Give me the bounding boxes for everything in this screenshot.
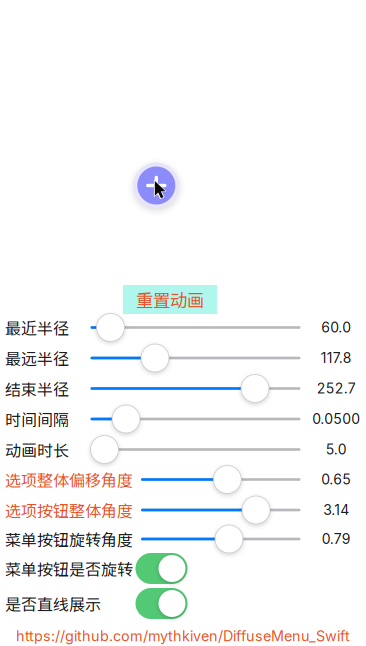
staticText: https://github.com/mythkiven/DiffuseMenu…: [16, 627, 350, 645]
button[interactable]: 重置动画: [123, 285, 217, 314]
button[interactable]: https://github.com/mythkiven/DiffuseMenu…: [13, 627, 353, 645]
staticText: 是否直线展示: [5, 592, 101, 615]
button[interactable]: Add: [131, 160, 181, 210]
button[interactable]: 菜单按钮是否旋转: [135, 553, 187, 584]
staticText: 菜单按钮是否旋转: [5, 557, 133, 580]
staticText: 选项整体偏移角度: [5, 468, 133, 491]
staticText: 117.8: [321, 349, 352, 366]
staticText: 最远半径: [5, 346, 69, 370]
staticText: 动画时长: [5, 438, 69, 461]
staticText: 结束半径: [5, 377, 69, 400]
staticText: 选项按钮整体角度: [5, 498, 133, 522]
staticText: 5.0: [326, 441, 347, 458]
staticText: 0.79: [322, 530, 351, 547]
staticText: 0.0500: [312, 410, 360, 427]
button[interactable]: 是否直线展示: [135, 588, 187, 619]
staticText: 最近半径: [5, 316, 69, 339]
staticText: 3.14: [323, 501, 349, 518]
staticText: 252.7: [317, 380, 356, 397]
staticText: 菜单按钮旋转角度: [5, 527, 133, 551]
staticText: 60.0: [321, 319, 351, 336]
staticText: 重置动画: [136, 287, 204, 312]
staticText: 时间间隔: [5, 407, 69, 431]
staticText: 0.65: [321, 471, 351, 488]
